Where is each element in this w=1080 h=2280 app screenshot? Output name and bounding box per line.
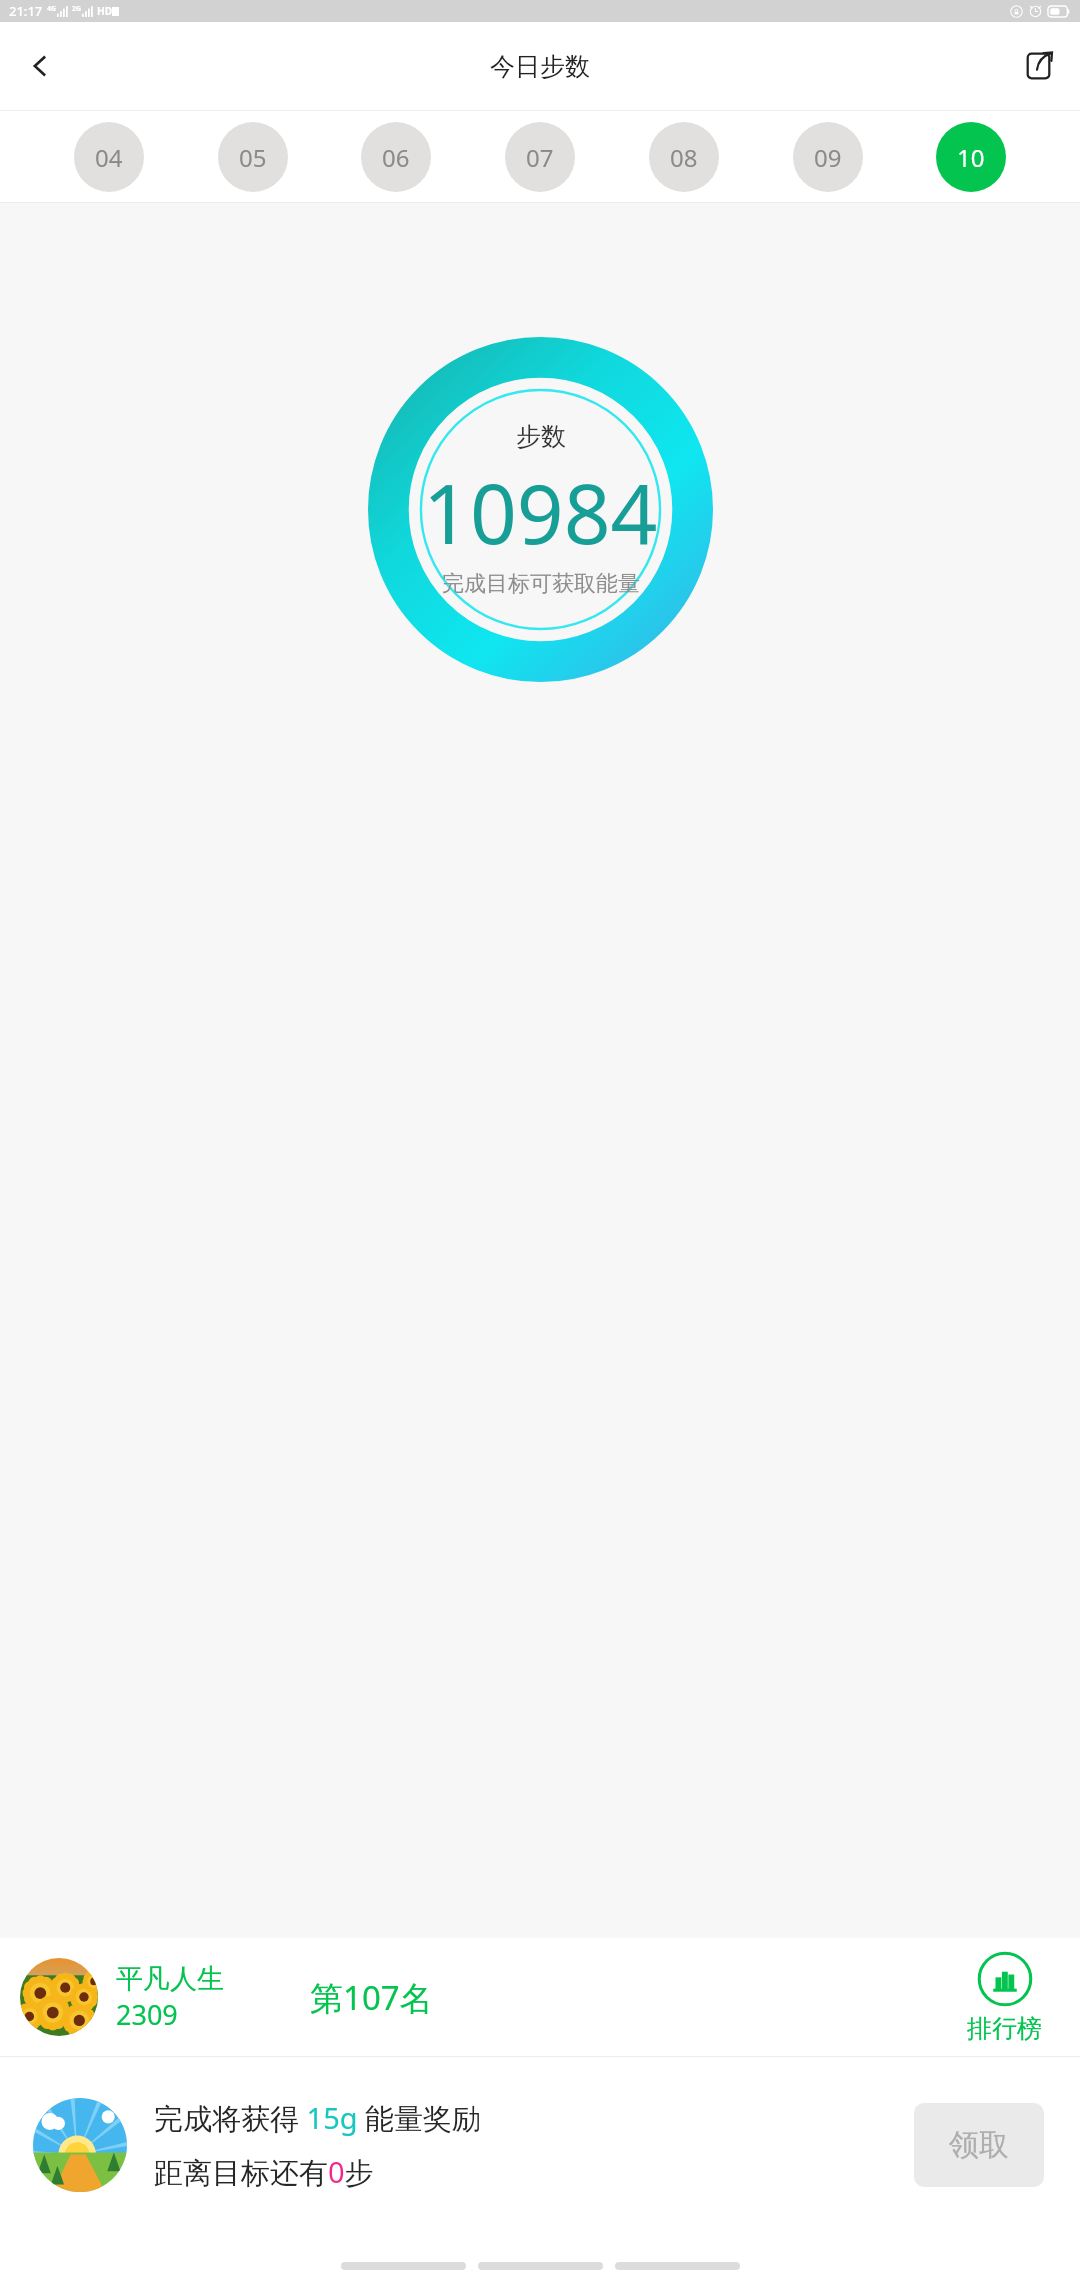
button[interactable]: 04 xyxy=(74,122,144,192)
staticText: 06 xyxy=(382,141,410,174)
staticText: 完成将获得 15g 能量奖励 xyxy=(154,2098,482,2138)
staticText: HD xyxy=(97,4,112,18)
staticText: 4G xyxy=(47,4,57,14)
button[interactable]: Navigation xyxy=(478,2262,603,2270)
staticText: 09 xyxy=(814,141,842,174)
staticText: 08 xyxy=(670,141,698,174)
button[interactable]: Share xyxy=(1000,22,1080,110)
staticText: 今日步数 xyxy=(490,51,590,82)
button[interactable]: 09 xyxy=(793,122,863,192)
button[interactable]: Navigation xyxy=(341,2262,466,2270)
staticText: 10 xyxy=(957,141,985,174)
staticText: 领取 xyxy=(949,2126,1009,2164)
button[interactable]: 07 xyxy=(505,122,575,192)
staticText: 07 xyxy=(526,141,554,174)
staticText: 05 xyxy=(239,141,267,174)
button[interactable]: 平凡人生 xyxy=(0,1938,1080,2056)
staticText: 04 xyxy=(95,141,123,174)
staticText: 步数 xyxy=(516,421,566,452)
staticText: 平凡人生 xyxy=(116,1962,224,1996)
staticText: 完成目标可获取能量 xyxy=(442,570,640,598)
staticText: 第107名 xyxy=(310,1975,433,2020)
button[interactable]: 06 xyxy=(361,122,431,192)
button[interactable]: 08 xyxy=(649,122,719,192)
staticText: 排行榜 xyxy=(967,2013,1042,2044)
button[interactable]: 排行榜 xyxy=(967,1951,1042,2044)
button[interactable]: Navigation xyxy=(615,2262,740,2270)
staticText: 10984 xyxy=(423,456,658,568)
staticText: 距离目标还有0步 xyxy=(154,2152,374,2192)
staticText: 2309 xyxy=(116,1996,178,2033)
button[interactable]: 10 xyxy=(936,122,1006,192)
button[interactable]: 05 xyxy=(218,122,288,192)
button[interactable]: 领取 xyxy=(914,2103,1044,2187)
staticText: 2G xyxy=(72,4,82,14)
button[interactable]: Back xyxy=(0,22,80,110)
staticText: 21:17 xyxy=(9,2,43,20)
